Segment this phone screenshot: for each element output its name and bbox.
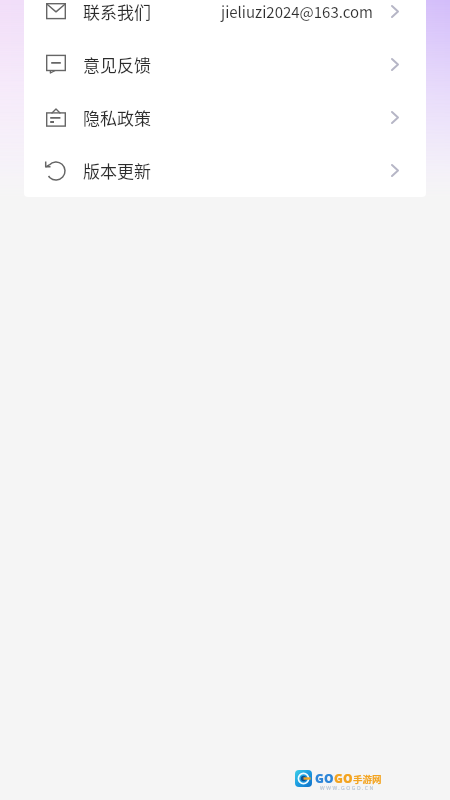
- other: 打开: [391, 111, 399, 124]
- staticText: 手游网: [353, 772, 382, 786]
- button[interactable]: 隐私政策: [24, 91, 426, 144]
- button[interactable]: 联系我们: [24, 0, 426, 38]
- other: 打开: [391, 164, 399, 177]
- staticText: GO: [315, 770, 334, 786]
- other: 打开: [391, 58, 399, 71]
- other: 打开: [391, 5, 399, 18]
- staticText: 意见反馈: [83, 52, 151, 77]
- staticText: jieliuzi2024@163.com: [221, 1, 374, 23]
- staticText: 版本更新: [83, 158, 151, 183]
- staticText: 联系我们: [83, 0, 151, 24]
- staticText: 隐私政策: [83, 105, 151, 130]
- staticText: WWW.GOGO.CN: [320, 785, 375, 792]
- staticText: GO: [334, 770, 353, 786]
- button[interactable]: 意见反馈: [24, 38, 426, 91]
- button[interactable]: 版本更新: [24, 144, 426, 197]
